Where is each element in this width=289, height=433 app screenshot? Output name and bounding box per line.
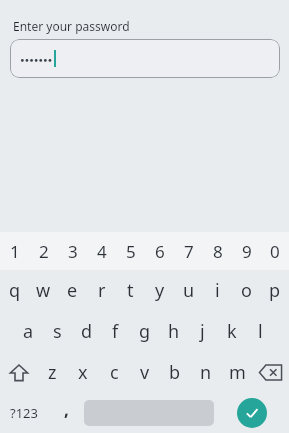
- button[interactable]: 9: [232, 232, 261, 270]
- button[interactable]: 7: [174, 232, 203, 270]
- staticText: k: [227, 319, 237, 344]
- button[interactable]: f: [101, 311, 130, 352]
- button[interactable]: 3: [58, 232, 87, 270]
- button[interactable]: 2: [29, 232, 58, 270]
- button[interactable]: ?123: [0, 393, 48, 433]
- staticText: 4: [97, 240, 107, 263]
- staticText: g: [139, 319, 151, 344]
- staticText: 9: [242, 240, 252, 263]
- staticText: 3: [68, 240, 78, 263]
- button[interactable]: 8: [203, 232, 232, 270]
- staticText: q: [9, 278, 21, 303]
- button[interactable]: 1: [0, 232, 29, 270]
- button[interactable]: 6: [145, 232, 174, 270]
- staticText: y: [155, 278, 165, 303]
- button[interactable]: v: [131, 352, 159, 393]
- staticText: 7: [184, 240, 194, 263]
- staticText: u: [183, 278, 195, 303]
- staticText: z: [48, 360, 57, 385]
- staticText: i: [215, 278, 220, 303]
- staticText: h: [168, 319, 180, 344]
- button[interactable]: l: [246, 311, 275, 352]
- button[interactable]: b: [161, 352, 189, 393]
- staticText: 5: [126, 240, 136, 263]
- button[interactable]: r: [87, 270, 116, 311]
- button[interactable]: d: [72, 311, 101, 352]
- staticText: ?123: [10, 404, 38, 422]
- button[interactable]: Confirm: [237, 398, 267, 428]
- staticText: b: [169, 360, 181, 385]
- button[interactable]: 4: [87, 232, 116, 270]
- button[interactable]: s: [43, 311, 72, 352]
- button[interactable]: p: [261, 270, 289, 311]
- button[interactable]: x: [69, 352, 97, 393]
- button[interactable]: o: [232, 270, 261, 311]
- button[interactable]: q: [0, 270, 29, 311]
- staticText: Enter your password: [13, 18, 130, 34]
- button[interactable]: e: [58, 270, 87, 311]
- staticText: f: [112, 319, 119, 344]
- staticText: 1: [10, 240, 20, 263]
- staticText: m: [229, 360, 246, 385]
- button[interactable]: k: [217, 311, 246, 352]
- staticText: v: [140, 360, 150, 385]
- staticText: o: [241, 278, 252, 303]
- button[interactable]: z: [38, 352, 66, 393]
- staticText: p: [269, 278, 281, 303]
- button[interactable]: ,: [48, 393, 84, 433]
- button[interactable]: g: [130, 311, 159, 352]
- staticText: 2: [39, 240, 49, 263]
- button[interactable]: 0: [261, 232, 289, 270]
- button[interactable]: w: [29, 270, 58, 311]
- button[interactable]: Shift: [3, 352, 35, 393]
- staticText: 0: [270, 240, 280, 263]
- button[interactable]: t: [116, 270, 145, 311]
- staticText: e: [67, 278, 78, 303]
- staticText: s: [53, 319, 62, 344]
- staticText: d: [81, 319, 93, 344]
- staticText: n: [200, 360, 212, 385]
- button[interactable]: n: [192, 352, 220, 393]
- button[interactable]: Backspace: [254, 352, 286, 393]
- staticText: j: [200, 319, 205, 344]
- button[interactable]: c: [100, 352, 128, 393]
- button[interactable]: a: [14, 311, 43, 352]
- staticText: x: [78, 360, 88, 385]
- button[interactable]: j: [188, 311, 217, 352]
- staticText: ,: [64, 398, 69, 421]
- button[interactable]: h: [159, 311, 188, 352]
- staticText: r: [98, 278, 106, 303]
- staticText: 6: [155, 240, 165, 263]
- button[interactable]: y: [145, 270, 174, 311]
- button[interactable]: 5: [116, 232, 145, 270]
- staticText: t: [127, 278, 134, 303]
- staticText: l: [258, 319, 263, 344]
- staticText: w: [36, 278, 51, 303]
- button[interactable]: [10, 39, 280, 78]
- button[interactable]: m: [223, 352, 251, 393]
- button[interactable]: u: [174, 270, 203, 311]
- staticText: c: [110, 360, 119, 385]
- staticText: a: [23, 319, 34, 344]
- button[interactable]: i: [203, 270, 232, 311]
- staticText: 8: [213, 240, 223, 263]
